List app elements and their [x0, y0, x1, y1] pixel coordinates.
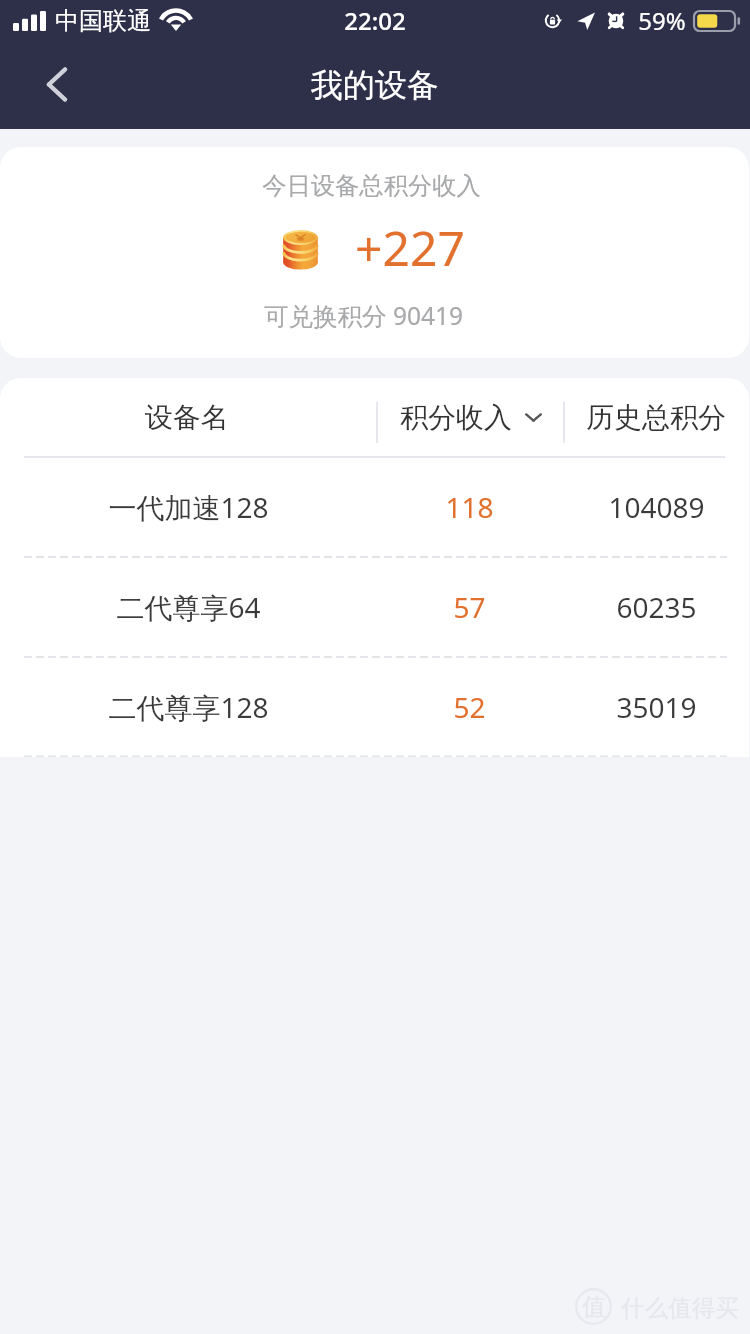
staticText: 118	[445, 488, 494, 526]
staticText: 59%	[638, 4, 686, 37]
staticText: 一代加速128	[108, 488, 269, 526]
staticText: 积分收入	[400, 400, 512, 435]
staticText: 52	[453, 688, 486, 726]
staticText: 中国联通	[55, 6, 151, 36]
staticText: 什么值得买	[621, 1293, 739, 1323]
staticText: 二代尊享128	[108, 688, 269, 726]
button[interactable]: 二代尊享64	[0, 558, 749, 656]
staticText: 我的设备	[311, 65, 439, 105]
button[interactable]: Back	[28, 59, 84, 115]
staticText: 35019	[616, 688, 697, 726]
staticText: 60235	[616, 588, 697, 626]
staticText: 104089	[608, 488, 705, 526]
staticText: 设备名	[145, 400, 229, 435]
button[interactable]: 一代加速128	[0, 458, 749, 556]
staticText: 57	[453, 588, 486, 626]
staticText: 值	[582, 1292, 606, 1322]
button[interactable]: 二代尊享128	[0, 658, 749, 756]
staticText: 今日设备总积分收入	[262, 171, 481, 202]
staticText: 二代尊享64	[116, 588, 261, 626]
staticText: +227	[355, 215, 465, 280]
staticText: 可兑换积分 90419	[264, 299, 463, 332]
staticText: 历史总积分	[586, 400, 726, 435]
staticText: 22:02	[344, 4, 406, 37]
